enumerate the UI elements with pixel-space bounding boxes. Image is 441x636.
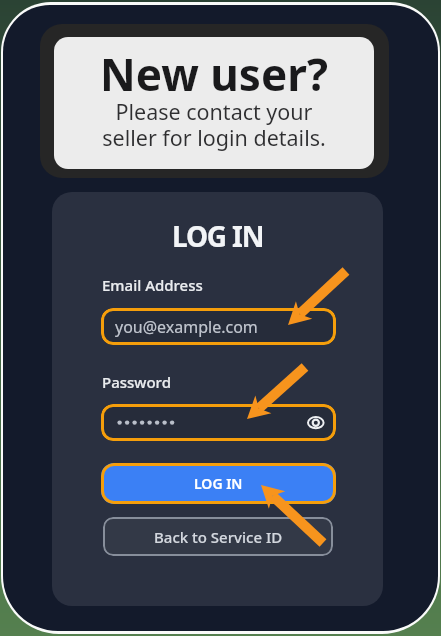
staticText: LOG IN bbox=[172, 217, 264, 255]
staticText: Password bbox=[102, 372, 171, 392]
staticText: Email Address bbox=[102, 275, 203, 295]
button[interactable] bbox=[101, 404, 336, 441]
button[interactable]: LOG IN bbox=[101, 463, 336, 504]
button[interactable]: Back to Service ID bbox=[103, 517, 333, 556]
staticText: Back to Service ID bbox=[154, 527, 283, 547]
staticText: New user? bbox=[100, 44, 328, 104]
staticText: you@example.com bbox=[115, 316, 258, 338]
staticText: Please contact your seller for login det… bbox=[102, 97, 326, 153]
button[interactable]: you@example.com bbox=[101, 308, 336, 345]
staticText: LOG IN bbox=[194, 474, 243, 493]
